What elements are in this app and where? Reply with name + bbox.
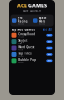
staticText: Word Quest [18,45,34,49]
staticText: GET [48,47,51,49]
staticText: Casual [18,55,23,57]
staticText: Top Free Games [11,28,34,31]
staticText: Space Wars [39,16,47,23]
button[interactable]: Word Quest [11,45,52,51]
staticText: Arcade [18,36,24,38]
staticText: Crossy Road [18,33,35,36]
staticText: Sky Jet [18,39,27,42]
staticText: EASY LAUNCH [23,9,41,13]
staticText: Puzzle [18,49,23,51]
button[interactable]: Space Wars [33,16,52,25]
staticText: GET [48,41,51,42]
button[interactable]: Tap Tiles [11,51,52,58]
staticText: Tap Tiles [18,52,31,55]
button[interactable]: Sky Jet [11,38,52,45]
staticText: See All [42,28,52,31]
staticText: GET [48,60,51,62]
staticText: Bubble Pop [18,58,36,62]
staticText: ACE [17,2,27,9]
staticText: GAMES [28,2,47,9]
staticText: Pro Racing [18,16,28,23]
staticText: Casual [18,62,23,63]
button[interactable]: Crossy Road [11,32,52,38]
button[interactable]: See All [42,28,52,31]
button[interactable]: Pro Racing [12,16,31,25]
button[interactable]: Bubble Pop [11,58,52,64]
staticText: GET [48,53,51,55]
staticText: Action [18,42,22,44]
staticText: GET [48,34,51,36]
